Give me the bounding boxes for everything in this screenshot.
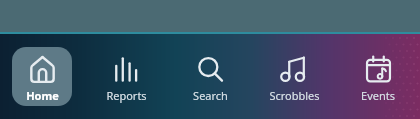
staticText: Scrobbles <box>269 88 320 103</box>
staticText: Search <box>193 88 228 103</box>
button[interactable]: Reports <box>96 47 156 106</box>
button[interactable]: Search <box>180 47 240 106</box>
button[interactable]: Scrobbles <box>264 47 324 106</box>
staticText: Events <box>361 88 395 103</box>
staticText: Home <box>26 88 59 103</box>
button[interactable]: Events <box>348 47 408 106</box>
staticText: Reports <box>106 88 147 103</box>
button[interactable]: Home <box>12 47 72 106</box>
